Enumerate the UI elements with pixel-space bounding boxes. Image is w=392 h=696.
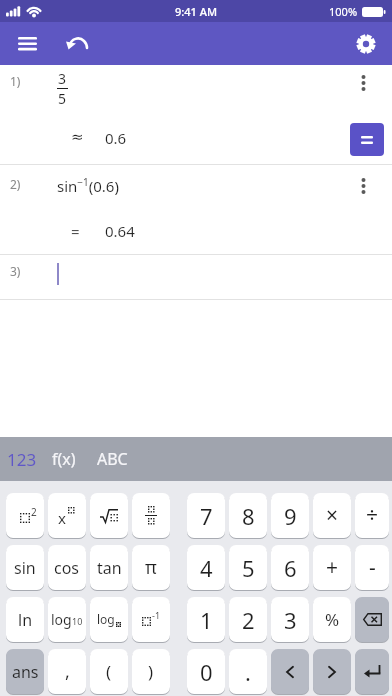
button[interactable]: ) [132, 649, 170, 694]
button[interactable]: ans [6, 649, 44, 694]
button[interactable]: ABC [85, 437, 136, 481]
staticText: ≈ [71, 128, 84, 145]
button[interactable]: 4 [187, 545, 225, 590]
staticText: 3 [58, 69, 67, 88]
staticText: ABC [97, 448, 128, 470]
staticText: tan [97, 557, 122, 579]
staticText: 10 [72, 615, 83, 627]
button[interactable]: , [48, 649, 86, 694]
button[interactable] [350, 123, 384, 156]
button[interactable] [350, 173, 376, 199]
button[interactable]: × [313, 493, 351, 538]
button[interactable]: sin [6, 545, 44, 590]
staticText: ln [18, 609, 33, 631]
staticText: π [145, 555, 157, 580]
button[interactable] [132, 493, 170, 538]
staticText: + [326, 553, 339, 582]
staticText: sin−1(0.6) [57, 175, 119, 196]
staticText: sin [14, 557, 36, 579]
button[interactable] [355, 597, 389, 642]
staticText: 9:41 AM [175, 4, 218, 19]
button[interactable]: 3 [271, 597, 309, 642]
staticText: 3 [284, 605, 297, 635]
staticText: ans [12, 661, 39, 683]
staticText: 2 [242, 605, 255, 635]
staticText: x [58, 508, 66, 528]
staticText: = [71, 221, 80, 241]
button[interactable]: ( [90, 649, 128, 694]
button[interactable]: 1 [187, 597, 225, 642]
staticText: ÷ [366, 501, 379, 530]
staticText: ( [106, 660, 112, 683]
button[interactable] [90, 493, 128, 538]
staticText: 3) [10, 263, 21, 279]
staticText: % [325, 608, 340, 631]
button[interactable]: 5 [229, 545, 267, 590]
staticText: 6 [284, 553, 297, 583]
staticText: 9 [284, 501, 297, 531]
staticText: f(x) [52, 448, 76, 470]
staticText: ) [148, 660, 154, 683]
staticText: 0 [200, 657, 213, 687]
button[interactable]: ÷ [355, 493, 389, 538]
button[interactable] [313, 649, 351, 694]
button[interactable] [60, 26, 96, 62]
button[interactable]: 8 [229, 493, 267, 538]
staticText: 8 [242, 501, 255, 531]
staticText: 5 [242, 553, 255, 583]
button[interactable]: cos [48, 545, 86, 590]
staticText: log [97, 611, 115, 627]
button[interactable]: 9 [271, 493, 309, 538]
staticText: , [65, 659, 70, 684]
button[interactable]: 123 [0, 437, 46, 481]
staticText: 123 [7, 448, 37, 471]
button[interactable]: -1 [132, 597, 170, 642]
staticText: × [326, 501, 339, 530]
button[interactable]: 2 [229, 597, 267, 642]
button[interactable]: 6 [271, 545, 309, 590]
staticText: 1) [10, 73, 21, 89]
button[interactable]: 2 [6, 493, 44, 538]
staticText: 2) [10, 176, 21, 192]
button[interactable] [348, 26, 384, 62]
button[interactable]: + [313, 545, 351, 590]
staticText: 4 [200, 553, 213, 583]
staticText: . [245, 657, 251, 687]
staticText: 5 [58, 89, 67, 108]
button[interactable] [350, 70, 376, 96]
staticText: 2 [31, 505, 37, 519]
button[interactable] [271, 649, 309, 694]
button[interactable]: π [132, 545, 170, 590]
staticText: 0.6 [105, 128, 127, 148]
staticText: 7 [200, 501, 213, 531]
staticText: log [51, 610, 72, 629]
staticText: cos [54, 557, 80, 579]
staticText: - [369, 553, 376, 582]
button[interactable]: f(x) [46, 437, 85, 481]
button[interactable]: 7 [187, 493, 225, 538]
staticText: 1 [200, 605, 213, 635]
button[interactable]: ln [6, 597, 44, 642]
button[interactable]: % [313, 597, 351, 642]
button[interactable] [355, 649, 389, 694]
button[interactable]: x [48, 493, 86, 538]
button[interactable]: tan [90, 545, 128, 590]
button[interactable]: - [355, 545, 389, 590]
staticText: 0.64 [105, 221, 135, 241]
staticText: 100% [329, 4, 358, 19]
button[interactable]: log [90, 597, 128, 642]
button[interactable]: 0 [187, 649, 225, 694]
button[interactable] [9, 26, 45, 62]
button[interactable]: . [229, 649, 267, 694]
staticText: -1 [152, 609, 161, 621]
button[interactable]: log [48, 597, 86, 642]
